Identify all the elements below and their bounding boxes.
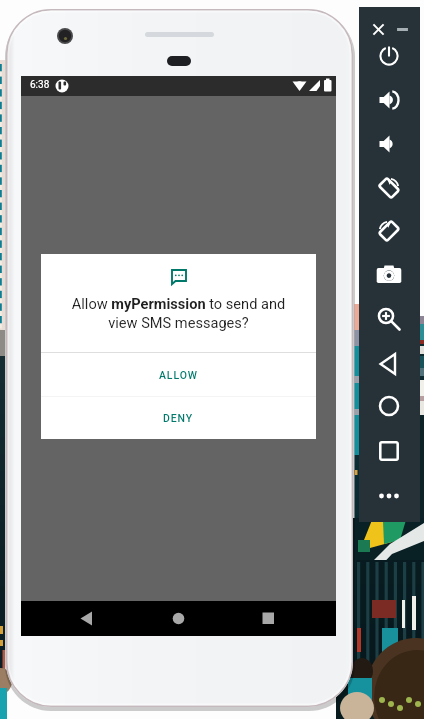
button[interactable]: Rotate right xyxy=(374,216,404,246)
button[interactable]: Volume down xyxy=(374,129,404,159)
button[interactable]: Overview xyxy=(374,436,404,466)
staticText: Allow myPermission to send and view SMS … xyxy=(63,295,294,332)
button[interactable]: Volume up xyxy=(374,85,404,115)
button[interactable]: Minimize xyxy=(394,21,411,38)
button[interactable]: More xyxy=(374,481,404,511)
button[interactable]: Take screenshot xyxy=(374,260,404,290)
button[interactable]: Rotate left xyxy=(374,173,404,203)
button[interactable]: ALLOW xyxy=(41,353,316,396)
button[interactable]: Zoom xyxy=(374,304,404,334)
button[interactable]: Home xyxy=(374,391,404,421)
button[interactable]: DENY xyxy=(41,397,316,439)
staticText: ALLOW xyxy=(159,369,198,381)
button[interactable]: Power xyxy=(374,41,404,71)
staticText: DENY xyxy=(163,412,194,424)
button[interactable]: Close xyxy=(370,21,387,38)
staticText: 6:38 xyxy=(30,79,50,91)
button[interactable]: Back xyxy=(374,349,404,379)
